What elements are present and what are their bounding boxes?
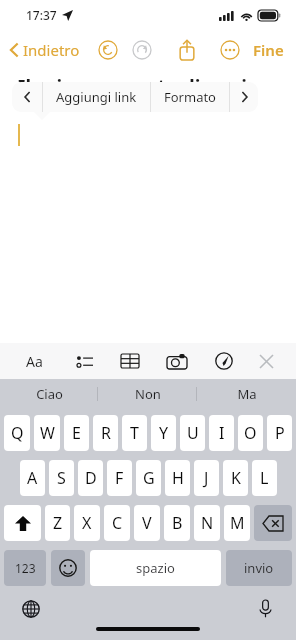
staticText: spazio [136, 559, 175, 577]
staticText: W [40, 422, 55, 444]
staticText: Q [11, 422, 24, 444]
staticText: A [27, 467, 38, 489]
staticText: I [219, 422, 225, 444]
staticText: X [82, 512, 92, 534]
button[interactable]: Cancella [254, 505, 292, 541]
staticText: H [172, 467, 184, 489]
button[interactable]: Q [4, 415, 30, 451]
button[interactable]: Disegno [210, 347, 238, 375]
button[interactable]: Fotocamera [163, 347, 191, 375]
staticText: Z [53, 512, 63, 534]
button[interactable]: Altro [215, 35, 245, 65]
button[interactable]: L [252, 460, 277, 496]
staticText: N [201, 512, 214, 534]
button[interactable]: 123 [4, 550, 46, 586]
button[interactable]: invio [226, 550, 292, 586]
staticText: 123 [15, 560, 36, 576]
staticText: Indietro [23, 40, 80, 60]
button[interactable]: Non [98, 379, 197, 409]
button[interactable]: Tabella [116, 347, 144, 375]
staticText: S [57, 467, 66, 489]
button[interactable]: Indietro [6, 36, 84, 64]
button[interactable]: Successivo [230, 82, 258, 112]
staticText: J [204, 467, 209, 489]
button[interactable]: I [209, 415, 234, 451]
staticText: R [101, 422, 111, 444]
button[interactable]: Ma [197, 379, 296, 409]
button[interactable]: F [107, 460, 132, 496]
staticText: Aggiungi link [56, 88, 137, 106]
staticText: F [115, 467, 124, 489]
button[interactable]: J [194, 460, 219, 496]
staticText: U [187, 422, 199, 444]
button[interactable]: Precedente [12, 82, 42, 112]
staticText: K [231, 467, 241, 489]
button[interactable]: O [238, 415, 263, 451]
button[interactable]: W [34, 415, 60, 451]
button[interactable]: R [93, 415, 118, 451]
staticText: Aa [26, 352, 43, 371]
button[interactable]: Formato [151, 82, 229, 112]
button[interactable]: X [74, 505, 100, 541]
button[interactable]: Lista di controllo [70, 347, 98, 375]
staticText: 17:37 [26, 7, 57, 23]
button[interactable]: Ripristina [127, 35, 157, 65]
staticText: E [72, 422, 81, 444]
staticText: G [143, 467, 155, 489]
button[interactable]: D [78, 460, 103, 496]
button[interactable]: E [64, 415, 89, 451]
staticText: L [260, 467, 269, 489]
button[interactable]: Y [151, 415, 176, 451]
staticText: Il primo appunto di oggi [18, 74, 247, 100]
button[interactable]: Dettatura [252, 596, 278, 622]
staticText: O [244, 422, 257, 444]
button[interactable]: Maiuscole [4, 505, 41, 541]
button[interactable]: A [20, 460, 45, 496]
button[interactable]: Chiudi [252, 347, 280, 375]
button[interactable]: Emoji [51, 550, 85, 586]
button[interactable]: K [223, 460, 248, 496]
staticText: V [142, 512, 152, 534]
staticText: D [85, 467, 97, 489]
button[interactable]: spazio [90, 550, 221, 586]
button[interactable]: Fine [249, 36, 288, 64]
button[interactable]: Z [45, 505, 70, 541]
button[interactable]: H [165, 460, 190, 496]
button[interactable]: U [180, 415, 205, 451]
button[interactable]: Annulla [93, 35, 123, 65]
button[interactable]: Condividi [172, 35, 202, 65]
staticText: Y [159, 422, 169, 444]
button[interactable]: Cambia lingua [18, 596, 44, 622]
staticText: T [130, 422, 139, 444]
button[interactable]: P [267, 415, 292, 451]
button[interactable]: G [136, 460, 161, 496]
button[interactable]: T [122, 415, 147, 451]
button[interactable]: C [104, 505, 130, 541]
button[interactable]: Stile testo [20, 347, 48, 375]
button[interactable]: M [224, 505, 250, 541]
staticText: B [172, 512, 183, 534]
button[interactable]: V [134, 505, 160, 541]
button[interactable]: B [164, 505, 190, 541]
staticText: Ma [237, 385, 257, 403]
button[interactable]: Aggiungi link [43, 82, 150, 112]
staticText: M [230, 512, 245, 534]
staticText: P [275, 422, 285, 444]
button[interactable]: S [49, 460, 74, 496]
staticText: invio [244, 559, 274, 577]
button[interactable]: N [194, 505, 220, 541]
staticText: C [112, 512, 123, 534]
staticText: Fine [253, 40, 284, 60]
staticText: Non [135, 385, 161, 403]
staticText: Formato [164, 88, 216, 106]
button[interactable]: Ciao [0, 379, 98, 409]
staticText: Ciao [36, 385, 63, 403]
